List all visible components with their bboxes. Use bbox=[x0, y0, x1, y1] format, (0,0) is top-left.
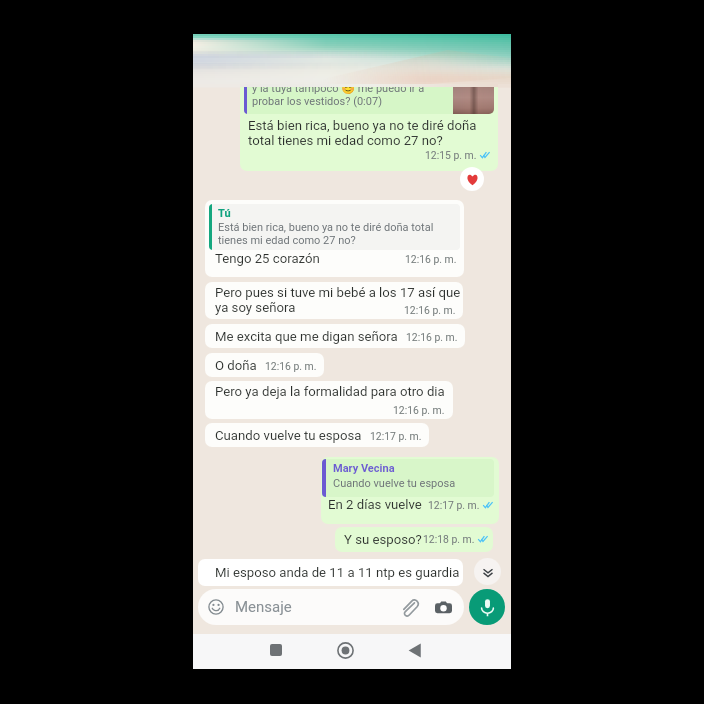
staticText: Mary Vecina bbox=[333, 462, 395, 475]
staticText: 12:16 p. m. bbox=[406, 331, 458, 343]
button[interactable]: O doña bbox=[205, 353, 324, 377]
staticText: En 2 días vuelve bbox=[328, 497, 422, 512]
staticText: O doña bbox=[215, 358, 257, 373]
staticText: Mi esposo anda de 11 a 11 ntp es guardia bbox=[215, 565, 460, 580]
staticText: Está bien rica, bueno ya no te diré doña bbox=[248, 118, 477, 133]
staticText: 12:16 p. m. bbox=[404, 304, 456, 316]
button[interactable]: Mary Vecina bbox=[321, 457, 499, 524]
button[interactable]: Heart reaction bbox=[460, 167, 484, 191]
staticText: Tú bbox=[218, 207, 231, 220]
staticText: Y su esposo? bbox=[344, 532, 422, 547]
button[interactable]: Recent apps bbox=[262, 636, 290, 664]
other: Attach bbox=[400, 598, 419, 617]
staticText: total tienes mi edad como 27 no? bbox=[248, 133, 443, 148]
staticText: ya soy señora bbox=[215, 300, 296, 315]
staticText: tienes mi edad como 27 no? bbox=[218, 234, 356, 247]
button[interactable]: Cuando vuelve tu esposa bbox=[205, 423, 429, 447]
staticText: Cuando vuelve tu esposa bbox=[333, 477, 456, 490]
staticText: 12:16 p. m. bbox=[405, 253, 457, 265]
staticText: 12:15 p. m. bbox=[425, 149, 477, 161]
staticText: Está bien rica, bueno ya no te diré doña… bbox=[218, 221, 434, 234]
other: Emoji bbox=[208, 599, 224, 615]
staticText: 12:17 p. m. bbox=[428, 499, 480, 511]
button[interactable]: Tú bbox=[205, 200, 464, 277]
button[interactable]: Me excita que me digan señora bbox=[205, 324, 465, 348]
staticText: 12:18 p. m. bbox=[423, 533, 475, 545]
button[interactable]: Pero pues si tuve mi bebé a los 17 así q… bbox=[205, 282, 463, 319]
staticText: Pero pues si tuve mi bebé a los 17 así q… bbox=[215, 285, 461, 300]
button[interactable]: Record voice message bbox=[469, 589, 505, 625]
staticText: Me excita que me digan señora bbox=[215, 329, 398, 344]
button[interactable]: Home bbox=[331, 636, 359, 664]
button[interactable]: Back bbox=[400, 636, 428, 664]
staticText: probar los vestidos? (0:07) bbox=[252, 95, 382, 108]
button[interactable]: Emoji bbox=[198, 589, 464, 625]
other: Camera bbox=[435, 600, 452, 615]
button[interactable]: Scroll to bottom bbox=[474, 558, 501, 585]
staticText: Cuando vuelve tu esposa bbox=[215, 428, 362, 443]
staticText: 12:17 p. m. bbox=[370, 430, 422, 442]
staticText: y la tuya tampoco 😊 me puedo ir a bbox=[252, 84, 425, 95]
staticText: 12:16 p. m. bbox=[393, 404, 445, 416]
staticText: Pero ya deja la formalidad para otro dia bbox=[215, 384, 445, 399]
staticText: Mensaje bbox=[235, 598, 292, 616]
button[interactable]: y la tuya tampoco 😊 me puedo ir a bbox=[240, 84, 498, 171]
button[interactable]: Y su esposo? bbox=[335, 527, 493, 552]
button[interactable]: Pero ya deja la formalidad para otro dia bbox=[205, 381, 453, 419]
staticText: 12:16 p. m. bbox=[265, 360, 317, 372]
button[interactable]: Mi esposo anda de 11 a 11 ntp es guardia bbox=[198, 559, 463, 586]
staticText: Tengo 25 corazón bbox=[215, 251, 320, 266]
